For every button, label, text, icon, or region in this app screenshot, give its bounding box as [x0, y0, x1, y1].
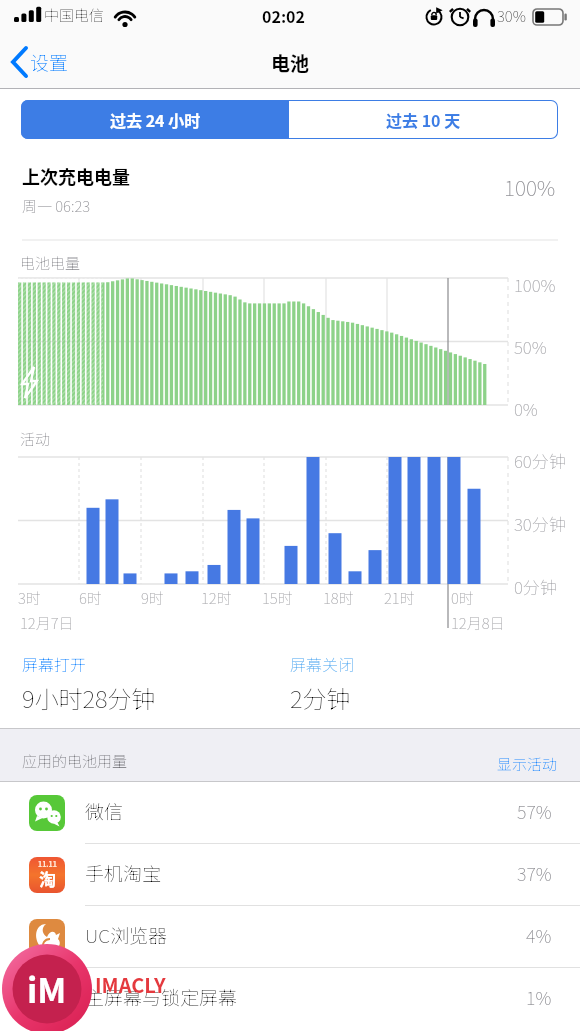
staticText: 微信 [85, 797, 124, 825]
staticText: 电池 [271, 49, 310, 77]
staticText: 12月7日 [20, 612, 74, 634]
button[interactable]: 11.11 [0, 844, 580, 906]
staticText: iM [27, 964, 67, 1013]
staticText: 屏幕关闭 [290, 652, 355, 675]
staticText: 屏幕打开 [22, 652, 87, 675]
staticText: 18时 [323, 587, 354, 609]
staticText: 02:02 [262, 4, 305, 27]
staticText: 57% [517, 798, 552, 824]
staticText: 21时 [384, 587, 415, 609]
staticText: 过去 10 天 [386, 108, 461, 131]
staticText: 37% [517, 860, 552, 886]
staticText: 设置 [30, 48, 69, 76]
staticText: 手机淘宝 [85, 859, 162, 887]
staticText: 4% [526, 922, 552, 948]
staticText: 12月8日 [451, 612, 505, 634]
staticText: 50% [514, 334, 547, 359]
staticText: 6时 [79, 587, 102, 609]
button[interactable]: 过去 24 小时 [21, 100, 289, 139]
staticText: 60分钟 [514, 448, 566, 473]
staticText: 上次充电电量 [22, 163, 130, 189]
button[interactable]: 主屏幕与锁定屏幕 [0, 968, 580, 1030]
staticText: 0分钟 [514, 574, 557, 599]
staticText: 11.11 [38, 859, 57, 869]
staticText: 0时 [451, 587, 474, 609]
staticText: 1% [526, 984, 552, 1010]
staticText: UC浏览器 [85, 921, 167, 949]
staticText: 0% [514, 396, 538, 421]
button[interactable]: 设置 [30, 43, 69, 81]
button[interactable]: 过去 10 天 [289, 100, 558, 139]
button[interactable]: 微信 [0, 782, 580, 844]
staticText: 周一 06:23 [22, 195, 91, 217]
staticText: 主屏幕与锁定屏幕 [85, 983, 238, 1011]
button[interactable]: 显示活动 [420, 753, 558, 775]
staticText: 淘 [39, 866, 56, 891]
staticText: 过去 24 小时 [110, 108, 201, 131]
staticText: IMACLY [95, 970, 166, 999]
staticText: 应用的电池用量 [22, 750, 128, 772]
staticText: 中国电信 [44, 4, 105, 26]
staticText: 100% [514, 272, 556, 297]
button[interactable]: UC浏览器 [0, 906, 580, 968]
staticText: 12时 [201, 587, 232, 609]
staticText: 9小时28分钟 [22, 680, 156, 715]
staticText: 3时 [18, 587, 41, 609]
staticText: 9时 [141, 587, 164, 609]
staticText: 2分钟 [290, 680, 351, 715]
staticText: 30分钟 [514, 511, 566, 536]
staticText: 电池电量 [20, 252, 81, 274]
staticText: 显示活动 [497, 753, 558, 775]
staticText: 100% [504, 172, 556, 202]
staticText: 30% [497, 5, 526, 27]
staticText: 活动 [20, 428, 51, 450]
staticText: 15时 [262, 587, 293, 609]
